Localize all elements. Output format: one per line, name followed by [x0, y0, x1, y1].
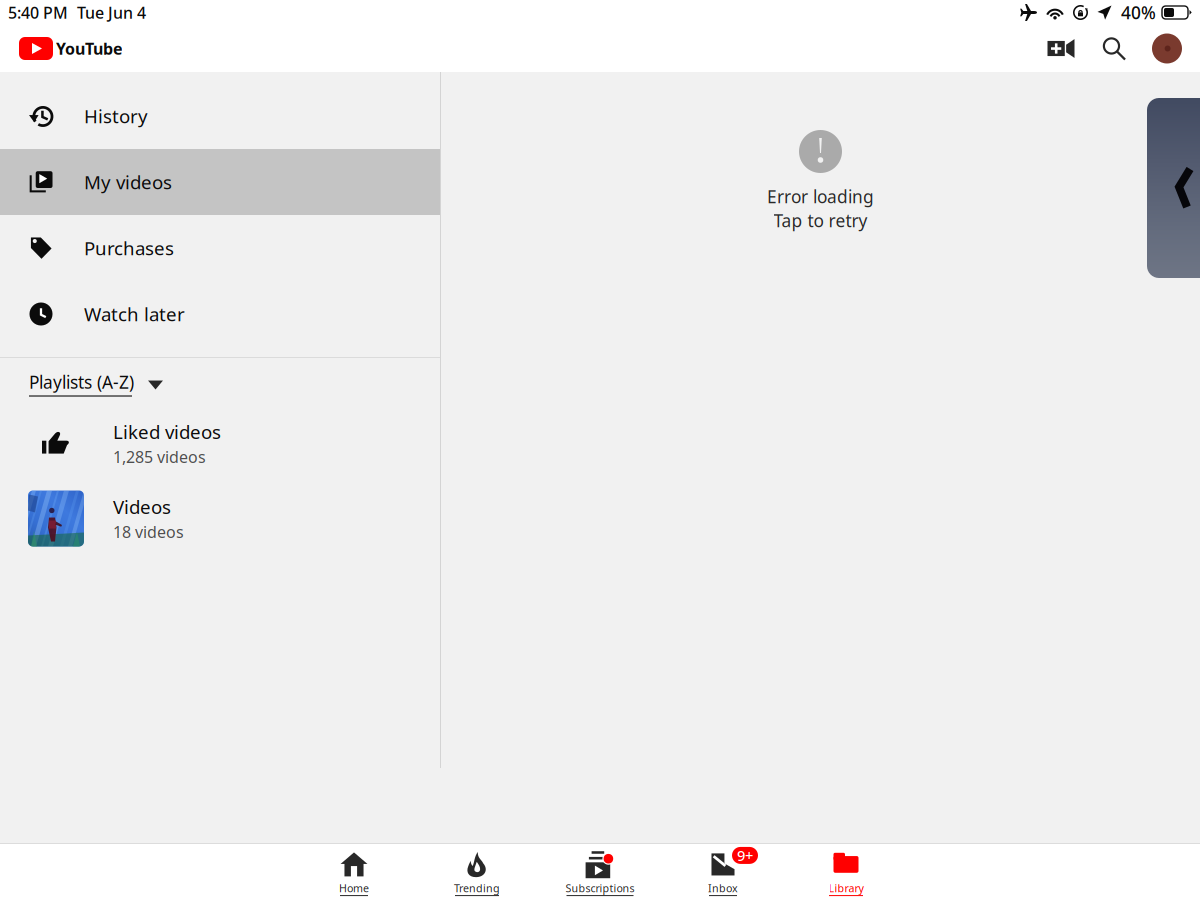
- button[interactable]: Error loading: [767, 130, 874, 232]
- staticText: 1,285 videos: [113, 446, 206, 467]
- button[interactable]: Subscriptions: [538, 844, 661, 900]
- button[interactable]: Liked videos: [0, 406, 440, 481]
- staticText: My videos: [84, 170, 172, 194]
- staticText: 9+: [737, 846, 753, 865]
- button[interactable]: Create: [1042, 31, 1080, 65]
- staticText: History: [84, 104, 148, 128]
- staticText: Playlists (A-Z): [29, 370, 134, 393]
- staticText: Tap to retry: [773, 209, 867, 232]
- staticText: Home: [339, 881, 369, 895]
- staticText: Liked videos: [113, 419, 221, 444]
- staticText: Inbox: [708, 881, 738, 895]
- button[interactable]: Library: [784, 844, 907, 900]
- button[interactable]: 9+: [661, 844, 784, 900]
- staticText: Watch later: [84, 302, 185, 326]
- staticText: Library: [828, 881, 863, 895]
- button[interactable]: Account: [1150, 31, 1184, 65]
- staticText: Purchases: [84, 236, 174, 260]
- button[interactable]: YouTube: [19, 34, 123, 62]
- staticText: 40%: [1121, 1, 1156, 24]
- staticText: Videos: [113, 494, 171, 519]
- staticText: 5:40 PM: [8, 2, 68, 23]
- button[interactable]: Trending: [415, 844, 538, 900]
- button[interactable]: My videos: [0, 149, 440, 215]
- button[interactable]: Home: [292, 844, 415, 900]
- button[interactable]: Purchases: [0, 215, 440, 281]
- button[interactable]: Videos: [0, 481, 440, 556]
- staticText: Subscriptions: [565, 881, 634, 895]
- staticText: Trending: [454, 881, 500, 895]
- button[interactable]: History: [0, 83, 440, 149]
- staticText: Tue Jun 4: [77, 2, 146, 23]
- staticText: Error loading: [767, 185, 874, 208]
- staticText: 18 videos: [113, 521, 184, 542]
- staticText: YouTube: [56, 38, 123, 59]
- button[interactable]: Watch later: [0, 281, 440, 347]
- button[interactable]: Playlists (A-Z): [0, 361, 440, 406]
- button[interactable]: Search: [1096, 31, 1132, 65]
